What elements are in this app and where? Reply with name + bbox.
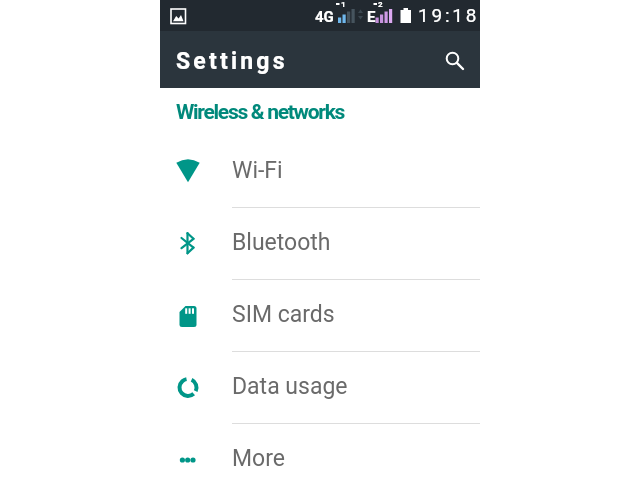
staticText: 2 (378, 0, 383, 9)
button[interactable]: Bluetooth (160, 207, 480, 279)
staticText: More (232, 445, 285, 472)
staticText: SIM cards (232, 301, 335, 328)
staticText: Wireless & networks (176, 100, 345, 125)
staticText: 4G (315, 8, 334, 26)
button[interactable]: Wi-Fi (160, 135, 480, 207)
button[interactable]: More (160, 423, 480, 480)
staticText: 1 (341, 0, 346, 9)
button[interactable] (440, 48, 464, 72)
staticText: Wi-Fi (232, 157, 283, 184)
staticText: Bluetooth (232, 229, 331, 256)
staticText: Settings (176, 48, 288, 75)
button[interactable]: Data usage (160, 351, 480, 423)
staticText: Data usage (232, 373, 348, 400)
staticText: 19:18 (418, 4, 480, 26)
button[interactable]: SIM cards (160, 279, 480, 351)
staticText: E (367, 8, 376, 26)
